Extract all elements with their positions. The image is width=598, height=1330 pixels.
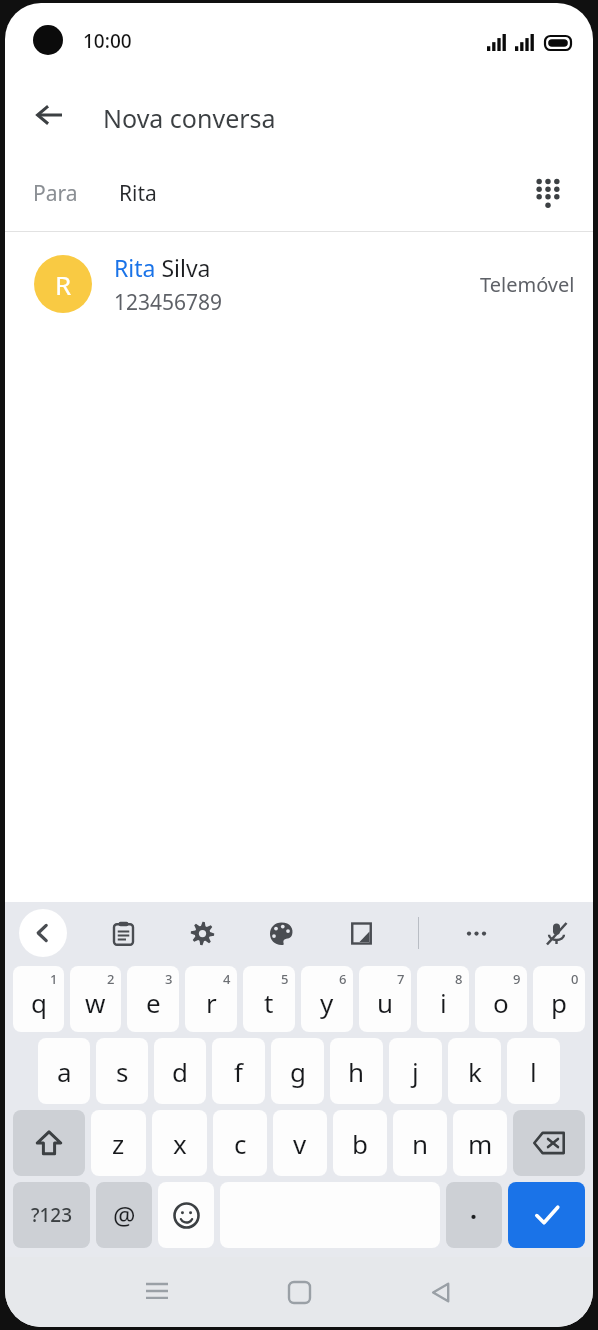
staticText: ?123 xyxy=(31,1202,73,1228)
button[interactable]: Recents xyxy=(118,1257,196,1327)
button[interactable]: i xyxy=(417,966,469,1032)
staticText: 123456789 xyxy=(114,288,223,317)
staticText: a xyxy=(57,1054,72,1089)
button[interactable]: z xyxy=(91,1110,146,1176)
staticText: f xyxy=(234,1054,243,1089)
staticText: . xyxy=(470,1192,478,1226)
button[interactable]: x xyxy=(152,1110,207,1176)
button[interactable]: t xyxy=(243,966,295,1032)
staticText: Rita Silva xyxy=(114,252,211,283)
button[interactable]: l xyxy=(507,1038,560,1104)
staticText: g xyxy=(290,1054,306,1089)
staticText: y xyxy=(320,985,334,1020)
button[interactable]: d xyxy=(154,1038,206,1104)
button[interactable]: y xyxy=(301,966,353,1032)
button[interactable]: r xyxy=(185,966,237,1032)
staticText: o xyxy=(493,985,509,1020)
button[interactable]: ?123 xyxy=(13,1182,90,1248)
staticText: k xyxy=(468,1054,482,1089)
button[interactable]: f xyxy=(212,1038,265,1104)
button[interactable]: n xyxy=(393,1110,447,1176)
button[interactable]: e xyxy=(127,966,179,1032)
staticText: l xyxy=(530,1054,537,1089)
staticText: 6 xyxy=(339,970,347,988)
button[interactable]: u xyxy=(359,966,411,1032)
button[interactable]: q xyxy=(13,966,64,1032)
staticText: 7 xyxy=(397,970,405,988)
staticText: 10:00 xyxy=(83,28,132,54)
button[interactable]: . xyxy=(446,1182,502,1248)
button[interactable]: a xyxy=(38,1038,90,1104)
staticText: d xyxy=(172,1054,188,1089)
button[interactable]: R xyxy=(5,232,593,336)
staticText: c xyxy=(234,1126,247,1161)
button[interactable]: Dialpad xyxy=(521,166,575,220)
button[interactable]: k xyxy=(448,1038,501,1104)
staticText: q xyxy=(31,985,47,1020)
button[interactable]: Para xyxy=(5,155,593,231)
staticText: Para xyxy=(33,179,78,208)
staticText: j xyxy=(412,1054,419,1089)
staticText: n xyxy=(412,1126,429,1161)
staticText: t xyxy=(264,985,274,1020)
staticText: m xyxy=(468,1126,493,1161)
button[interactable]: s xyxy=(96,1038,148,1104)
staticText: 4 xyxy=(223,970,231,988)
button[interactable]: More options xyxy=(453,910,499,956)
button[interactable]: Home xyxy=(260,1257,338,1327)
staticText: v xyxy=(293,1126,307,1161)
button[interactable]: @ xyxy=(96,1182,152,1248)
button[interactable]: Emoji xyxy=(158,1182,214,1248)
staticText: R xyxy=(55,267,72,302)
button[interactable]: Done xyxy=(508,1182,585,1248)
button[interactable]: Clipboard xyxy=(100,910,146,956)
staticText: 8 xyxy=(455,970,463,988)
button[interactable]: c xyxy=(213,1110,267,1176)
button[interactable]: b xyxy=(333,1110,387,1176)
staticText: Nova conversa xyxy=(103,101,276,135)
button[interactable]: o xyxy=(475,966,527,1032)
button[interactable]: Settings xyxy=(179,910,225,956)
button[interactable]: Back xyxy=(23,89,75,141)
staticText: h xyxy=(348,1054,365,1089)
button[interactable]: v xyxy=(273,1110,327,1176)
button[interactable]: Voice input off xyxy=(533,910,579,956)
button[interactable]: Collapse toolbar xyxy=(19,909,67,957)
staticText: 3 xyxy=(165,970,173,988)
button[interactable]: Theme xyxy=(258,910,304,956)
button[interactable]: Backspace xyxy=(513,1110,585,1176)
button[interactable]: m xyxy=(453,1110,507,1176)
button[interactable]: g xyxy=(271,1038,324,1104)
button[interactable]: Back xyxy=(402,1257,480,1327)
staticText: x xyxy=(173,1126,187,1161)
button[interactable]: j xyxy=(389,1038,442,1104)
button[interactable]: Shift xyxy=(13,1110,85,1176)
staticText: s xyxy=(116,1054,129,1089)
staticText: r xyxy=(206,985,217,1020)
button[interactable]: p xyxy=(533,966,585,1032)
staticText: w xyxy=(85,985,106,1020)
button[interactable]: h xyxy=(330,1038,383,1104)
button[interactable]: w xyxy=(70,966,121,1032)
staticText: Telemóvel xyxy=(480,271,575,298)
staticText: 2 xyxy=(107,970,115,988)
staticText: b xyxy=(352,1126,368,1161)
staticText: e xyxy=(146,985,161,1020)
staticText: p xyxy=(551,985,567,1020)
staticText: z xyxy=(112,1126,125,1161)
staticText: 1 xyxy=(50,970,58,988)
staticText: Rita xyxy=(119,179,157,208)
staticText: 5 xyxy=(281,970,289,988)
staticText: 0 xyxy=(571,970,579,988)
button[interactable]: Resize keyboard xyxy=(338,910,384,956)
staticText: u xyxy=(377,985,394,1020)
staticText: @ xyxy=(113,1198,136,1232)
staticText: i xyxy=(440,985,447,1020)
staticText: 9 xyxy=(513,970,521,988)
